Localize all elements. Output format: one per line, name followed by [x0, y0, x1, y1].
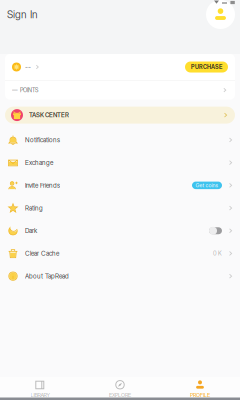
button[interactable]: Clear Cache: [0, 242, 240, 265]
button[interactable]: About TapRead: [0, 265, 240, 287]
staticText: --: [25, 63, 31, 71]
staticText: Rating: [25, 204, 43, 212]
button[interactable]: Invite Friends: [0, 174, 240, 197]
staticText: EXPLORE: [109, 392, 131, 398]
staticText: PURCHASE: [191, 64, 222, 70]
staticText: Dark: [25, 227, 37, 235]
staticText: LIBRARY: [30, 392, 49, 398]
staticText: Get coins: [195, 182, 218, 189]
staticText: 0 K: [213, 250, 222, 257]
button[interactable]: EXPLORE: [80, 381, 160, 397]
staticText: Notifications: [25, 136, 60, 144]
button[interactable]: Exchange: [0, 151, 240, 174]
button[interactable]: LIBRARY: [0, 381, 80, 397]
button[interactable]: PURCHASE: [185, 61, 228, 72]
staticText: PROFILE: [190, 392, 210, 398]
button[interactable]: TASK CENTER: [5, 107, 235, 124]
button[interactable]: PROFILE: [160, 381, 240, 397]
button[interactable]: Dark: [0, 219, 240, 242]
staticText: Sign In: [7, 8, 38, 21]
staticText: — POINTS: [12, 87, 38, 93]
staticText: About TapRead: [25, 272, 69, 280]
staticText: TASK CENTER: [29, 111, 69, 119]
button[interactable]: Rating: [0, 197, 240, 219]
staticText: Clear Cache: [25, 250, 59, 257]
button[interactable]: Account: [206, 0, 235, 29]
staticText: Exchange: [25, 159, 53, 166]
staticText: Invite Friends: [25, 181, 60, 189]
button[interactable]: Notifications: [0, 129, 240, 151]
